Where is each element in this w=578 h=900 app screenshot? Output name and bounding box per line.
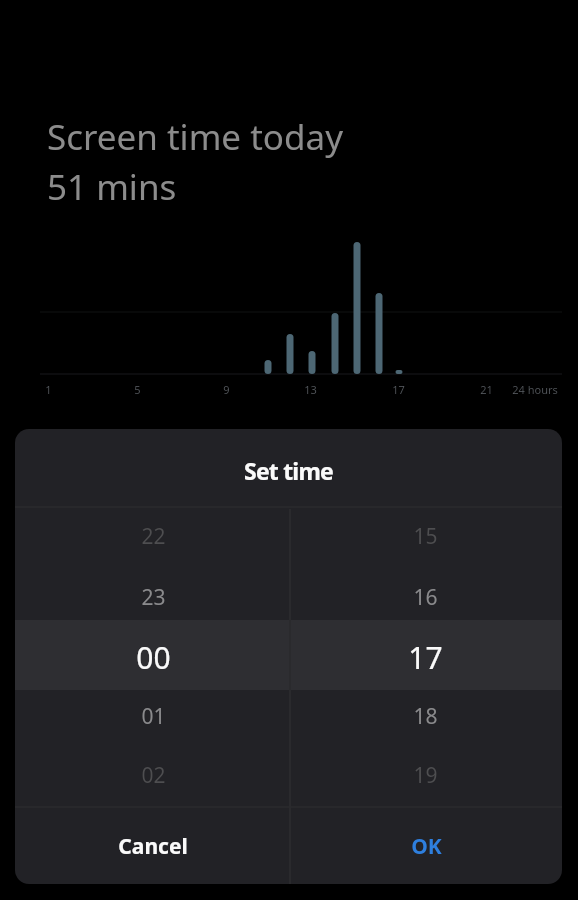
button[interactable]: 00 bbox=[93, 631, 213, 683]
staticText: 15 bbox=[413, 522, 438, 551]
button[interactable]: 18 bbox=[365, 692, 485, 740]
staticText: Screen time today bbox=[47, 113, 344, 161]
staticText: 00 bbox=[136, 637, 171, 678]
staticText: 17 bbox=[392, 382, 405, 397]
staticText: 17 bbox=[408, 637, 443, 678]
button[interactable]: 22 bbox=[93, 512, 213, 560]
button[interactable]: 23 bbox=[93, 573, 213, 621]
button[interactable]: 16 bbox=[365, 573, 485, 621]
staticText: 24 hours bbox=[512, 382, 558, 397]
button[interactable]: 02 bbox=[93, 751, 213, 799]
staticText: 19 bbox=[413, 761, 438, 790]
button[interactable]: 01 bbox=[93, 692, 213, 740]
staticText: 9 bbox=[223, 382, 230, 397]
staticText: 22 bbox=[141, 522, 166, 551]
staticText: 1 bbox=[45, 382, 52, 397]
staticText: Set time bbox=[244, 455, 333, 486]
staticText: 16 bbox=[413, 583, 438, 612]
staticText: 02 bbox=[141, 761, 166, 790]
button[interactable]: 15 bbox=[365, 512, 485, 560]
staticText: 21 bbox=[480, 382, 493, 397]
button[interactable]: Cancel bbox=[15, 808, 290, 884]
staticText: 01 bbox=[141, 702, 166, 731]
staticText: 18 bbox=[413, 702, 438, 731]
staticText: Cancel bbox=[118, 832, 188, 861]
staticText: OK bbox=[411, 832, 442, 861]
button[interactable]: 19 bbox=[365, 751, 485, 799]
staticText: 51 mins bbox=[47, 163, 177, 211]
staticText: 23 bbox=[141, 583, 166, 612]
staticText: 13 bbox=[304, 382, 317, 397]
button[interactable]: OK bbox=[291, 808, 562, 884]
staticText: 5 bbox=[134, 382, 141, 397]
button[interactable]: 17 bbox=[365, 631, 485, 683]
